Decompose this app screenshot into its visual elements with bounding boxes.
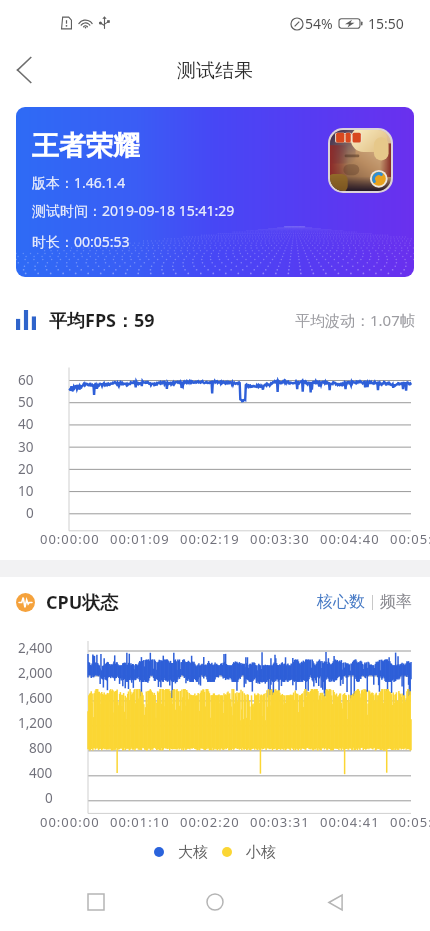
staticText: 00:01:10 (110, 813, 170, 831)
staticText: CPU状态 (46, 590, 119, 615)
staticText: 版本：1.46.1.4 (32, 173, 126, 192)
button[interactable]: 频率 (378, 587, 414, 617)
staticText: 小核 (246, 843, 276, 862)
staticText: 2,400 (18, 639, 53, 657)
staticText: 平均FPS：59 (49, 308, 155, 333)
staticText: 0 (45, 789, 53, 807)
staticText: 00:01:09 (110, 530, 170, 548)
staticText: 50 (18, 393, 34, 411)
staticText: 2,000 (18, 664, 53, 682)
staticText: 大核 (178, 843, 208, 862)
staticText: 00:04:41 (320, 813, 380, 831)
staticText: 00:03:31 (250, 813, 310, 831)
staticText: 测试时间：2019-09-18 15:41:29 (32, 201, 235, 220)
staticText: 1,600 (18, 689, 53, 707)
staticText: 时长：00:05:53 (32, 232, 130, 251)
button[interactable]: Home (191, 878, 239, 926)
button[interactable]: 王者荣耀 (16, 107, 414, 277)
staticText: 测试结果 (177, 59, 253, 83)
staticText: 频率 (380, 592, 412, 612)
staticText: 00:02:19 (180, 530, 240, 548)
staticText: 20 (18, 460, 34, 478)
staticText: 00:05:5 (390, 530, 430, 548)
staticText: 00:00:00 (40, 530, 100, 548)
staticText: 400 (29, 764, 53, 782)
staticText: 30 (18, 438, 34, 456)
staticText: 800 (29, 739, 53, 757)
staticText: 0 (26, 504, 34, 522)
staticText: 54% (305, 14, 333, 33)
staticText: 平均波动：1.07帧 (295, 310, 415, 330)
button[interactable]: Back (2, 48, 46, 92)
staticText: 00:03:30 (250, 530, 310, 548)
staticText: 00:00:00 (40, 813, 100, 831)
staticText: 王者荣耀 (32, 129, 140, 163)
staticText: 00:04:40 (320, 530, 380, 548)
staticText: 00:05:5 (390, 813, 430, 831)
staticText: 15:50 (368, 14, 404, 33)
staticText: 40 (18, 415, 34, 433)
button[interactable]: Back (311, 878, 359, 926)
staticText: 60 (18, 371, 34, 389)
staticText: 00:02:20 (180, 813, 240, 831)
button[interactable]: 核心数 (315, 587, 367, 617)
button[interactable]: Recents (72, 878, 120, 926)
staticText: 核心数 (317, 592, 365, 612)
staticText: 10 (18, 482, 34, 500)
staticText: 1,200 (18, 714, 53, 732)
